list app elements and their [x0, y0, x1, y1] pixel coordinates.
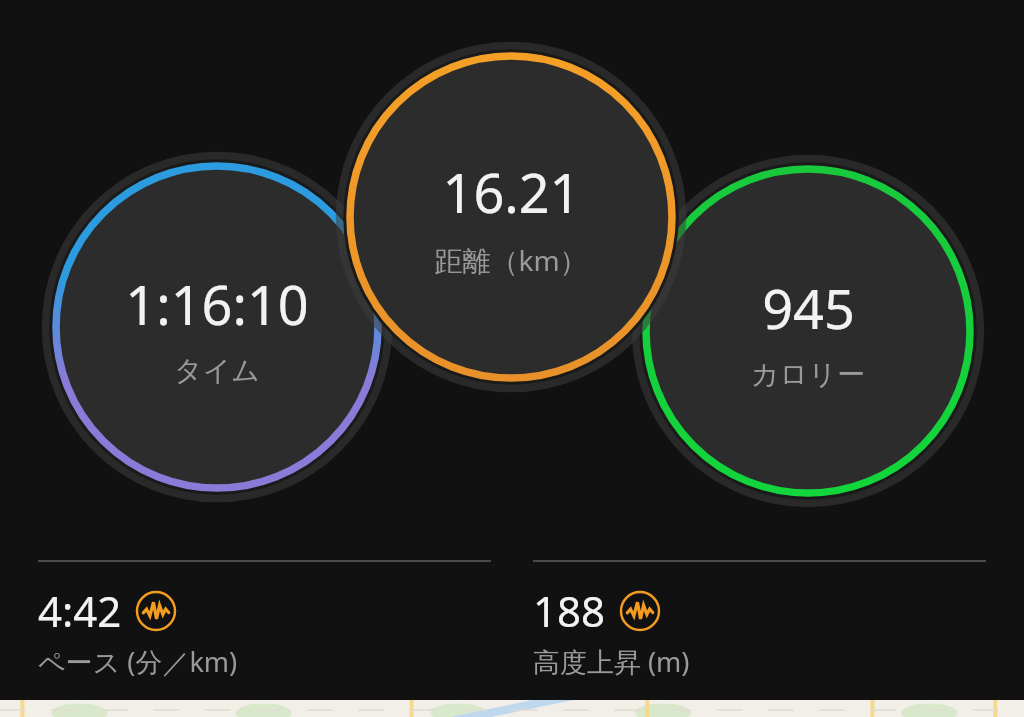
button[interactable]: 16.21	[351, 57, 671, 377]
staticText: 1:16:10	[125, 267, 309, 341]
staticText: 高度上昇 (m)	[533, 643, 690, 680]
staticText: 945	[762, 271, 855, 345]
other: Activity detail	[620, 591, 660, 631]
staticText: タイム	[174, 353, 260, 388]
staticText: 4:42	[38, 582, 122, 639]
button[interactable]: 4:42	[38, 559, 491, 680]
staticText: 16.21	[442, 155, 581, 229]
other: Activity detail	[136, 591, 176, 631]
button[interactable]: 1:16:10	[57, 167, 377, 487]
staticText: カロリー	[751, 357, 865, 392]
staticText: 188	[533, 582, 606, 639]
staticText: 距離（km）	[434, 241, 588, 279]
button[interactable]: 945	[648, 171, 968, 491]
staticText: ペース (分／km)	[38, 643, 238, 680]
button[interactable]: 188	[533, 559, 986, 680]
